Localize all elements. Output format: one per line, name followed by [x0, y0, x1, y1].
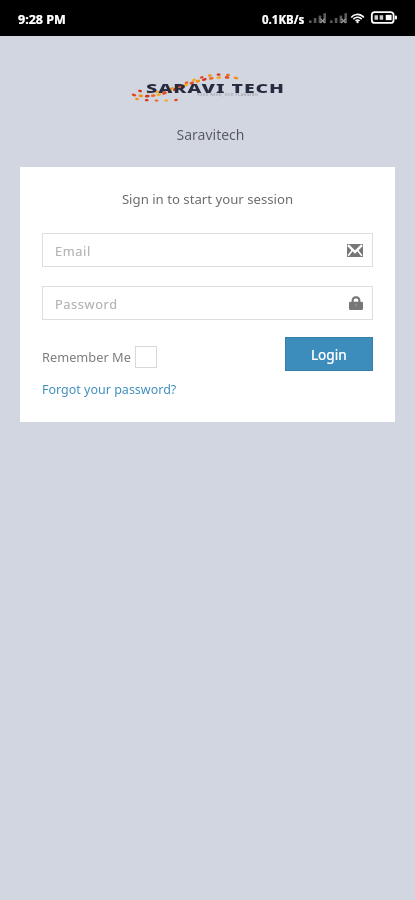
staticText: Password — [55, 295, 118, 312]
button[interactable]: Login — [285, 337, 373, 371]
button[interactable]: Remember Me — [42, 343, 157, 365]
staticText: Email — [55, 242, 91, 259]
staticText: Sign in to start your session — [42, 190, 373, 208]
staticText: 9:28 PM — [18, 11, 66, 28]
staticText: 0.1KB/s — [262, 12, 305, 28]
staticText: YOUR NEED, OUR PLANNING — [197, 92, 259, 97]
button[interactable]: Forgot your password? — [42, 381, 177, 398]
staticText: SARAVI TECH — [146, 79, 285, 97]
button[interactable]: Email — [42, 233, 373, 267]
other: Password — [349, 296, 363, 310]
staticText: Login — [311, 345, 347, 364]
staticText: Saravitech — [3, 125, 415, 144]
other: Email — [347, 244, 363, 257]
button[interactable]: Password — [42, 286, 373, 320]
staticText: Remember Me — [42, 348, 131, 365]
